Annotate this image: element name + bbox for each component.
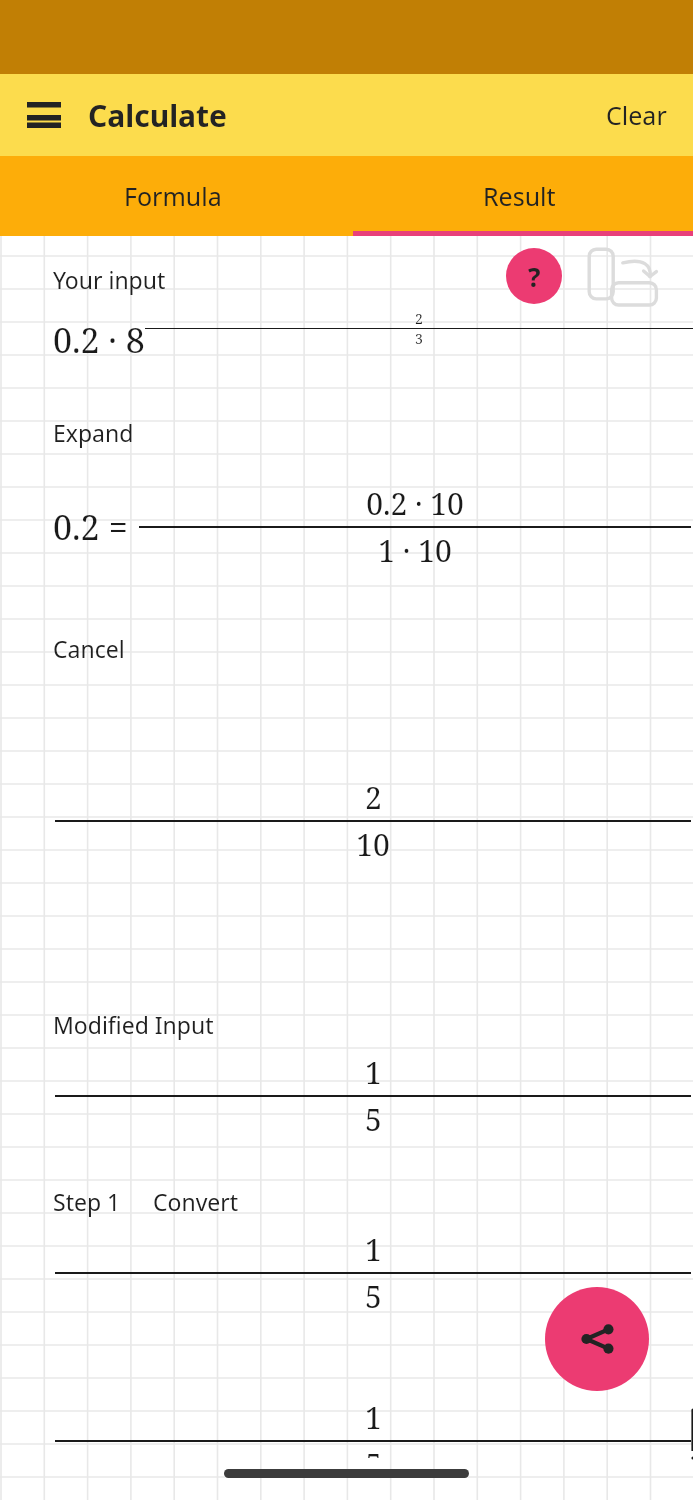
staticText: 0.2 · 8 xyxy=(53,317,145,363)
staticText: 10 xyxy=(356,824,390,865)
staticText: 1 · 10 xyxy=(378,530,452,571)
staticText: 5 xyxy=(365,1444,382,1458)
staticText: ? xyxy=(528,259,541,294)
button[interactable]: Result xyxy=(346,156,693,236)
staticText: = xyxy=(100,504,137,550)
staticText: 5 xyxy=(365,1276,382,1317)
button[interactable]: Formula xyxy=(0,156,346,236)
staticText: 1 xyxy=(365,1229,382,1270)
staticText: Step 1 xyxy=(53,1186,121,1217)
staticText: 3 xyxy=(415,329,423,348)
button[interactable]: Clear xyxy=(590,88,683,142)
staticText: Cancel xyxy=(53,633,125,664)
staticText: 0.2 · 10 xyxy=(366,483,464,524)
staticText: Formula xyxy=(124,179,222,213)
staticText: 1 xyxy=(365,1397,382,1438)
staticText: 5 xyxy=(365,1099,382,1140)
button[interactable]: Rotate device xyxy=(586,248,666,310)
staticText: 0.2 xyxy=(53,504,100,550)
staticText: 2 xyxy=(415,309,423,328)
staticText: Expand xyxy=(53,417,134,448)
staticText: Convert xyxy=(153,1186,239,1217)
staticText: Clear xyxy=(606,98,667,132)
button[interactable]: Help xyxy=(506,248,562,304)
staticText: Modified Input xyxy=(53,1009,214,1040)
staticText: Your input xyxy=(53,264,166,295)
button[interactable]: Open navigation menu xyxy=(14,85,74,145)
staticText: Calculate xyxy=(88,95,227,136)
staticText: 2 xyxy=(365,777,382,818)
staticText: 1 xyxy=(365,1052,382,1093)
button[interactable]: Share xyxy=(545,1287,649,1391)
staticText: Result xyxy=(483,179,556,213)
